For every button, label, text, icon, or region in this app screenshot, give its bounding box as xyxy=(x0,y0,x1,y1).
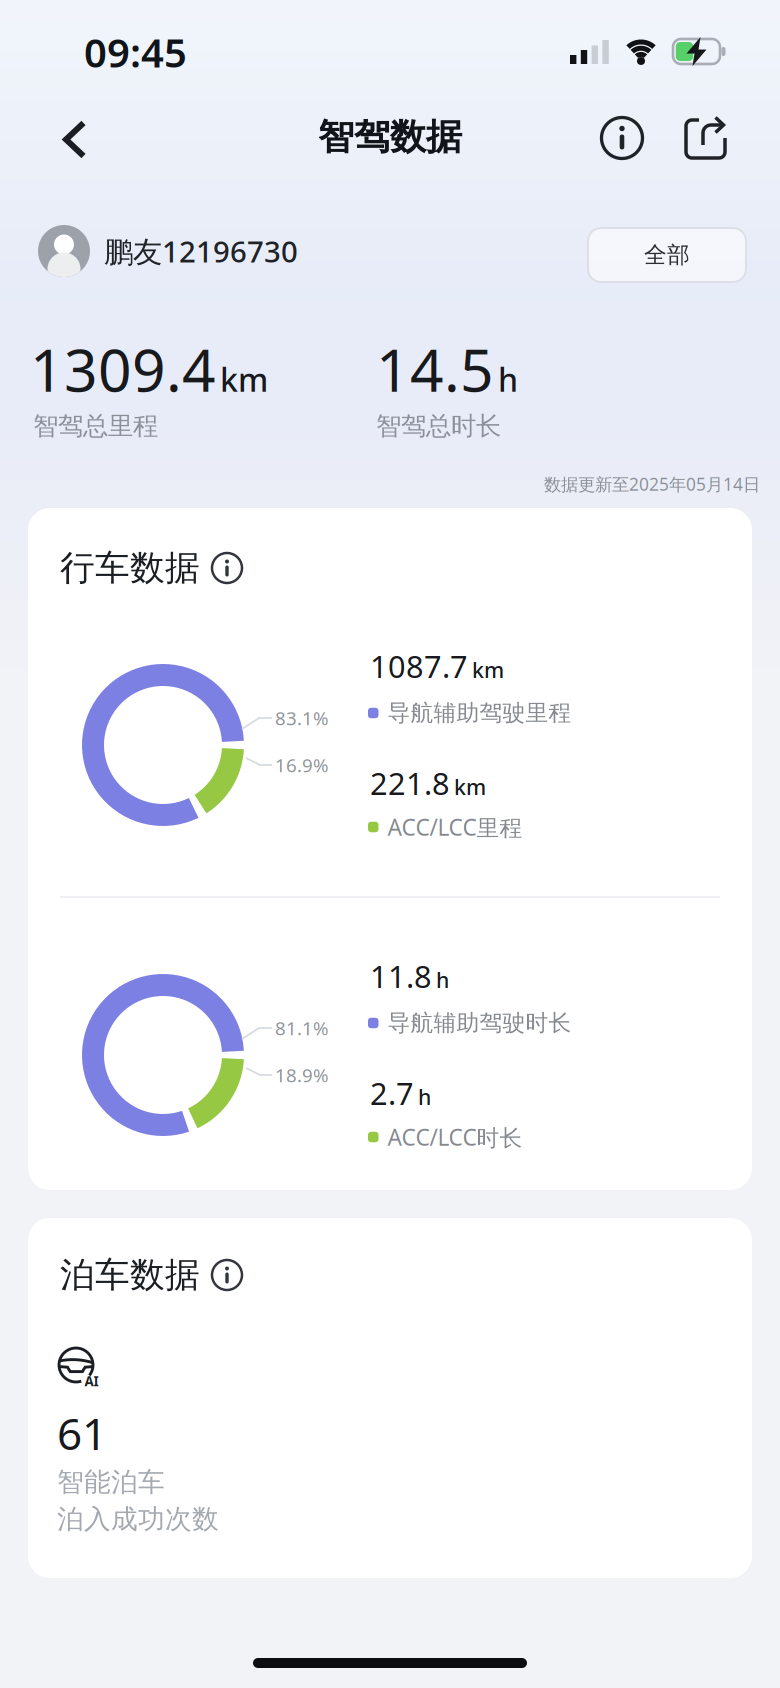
button[interactable]: Info xyxy=(0,0,780,1688)
staticText: 导航辅助驾驶时长 xyxy=(387,1009,571,1037)
staticText: AI xyxy=(84,1372,98,1390)
staticText: ACC/LCC时长 xyxy=(387,1122,522,1152)
staticText: 11.8 xyxy=(370,956,432,996)
staticText: 16.9% xyxy=(275,753,329,777)
staticText: 智驾总时长 xyxy=(376,410,501,441)
staticText: h xyxy=(498,358,518,401)
staticText: 83.1% xyxy=(275,706,329,730)
staticText: 1309.4 xyxy=(30,330,216,408)
staticText: 全部 xyxy=(644,241,690,269)
staticText: 09:45 xyxy=(84,25,187,78)
staticText: h xyxy=(418,1082,431,1111)
staticText: 智能泊车 xyxy=(57,1466,165,1498)
staticText: 14.5 xyxy=(376,330,494,408)
button[interactable]: 全部 xyxy=(0,0,780,1688)
staticText: 1087.7 xyxy=(370,646,468,686)
staticText: 泊入成功次数 xyxy=(57,1503,219,1535)
staticText: 智驾总里程 xyxy=(33,410,158,441)
staticText: 81.1% xyxy=(275,1016,329,1040)
staticText: 导航辅助驾驶里程 xyxy=(387,699,571,727)
button[interactable]: About 泊车数据 xyxy=(0,0,780,1688)
button[interactable]: About 行车数据 xyxy=(0,0,780,1688)
button[interactable]: Back xyxy=(0,0,780,1688)
staticText: km xyxy=(454,772,486,801)
button[interactable]: Share xyxy=(0,0,780,1688)
staticText: 智驾数据 xyxy=(318,115,462,159)
staticText: ACC/LCC里程 xyxy=(387,812,522,842)
staticText: 18.9% xyxy=(275,1063,329,1087)
staticText: 行车数据 xyxy=(60,547,200,589)
staticText: 221.8 xyxy=(370,763,450,803)
staticText: 鹏友12196730 xyxy=(104,231,298,270)
staticText: 数据更新至2025年05月14日 xyxy=(544,472,760,495)
staticText: 61 xyxy=(57,1404,107,1462)
staticText: km xyxy=(472,655,504,684)
staticText: 泊车数据 xyxy=(60,1254,200,1296)
staticText: h xyxy=(436,965,449,994)
staticText: km xyxy=(220,358,268,401)
staticText: 2.7 xyxy=(370,1073,414,1113)
